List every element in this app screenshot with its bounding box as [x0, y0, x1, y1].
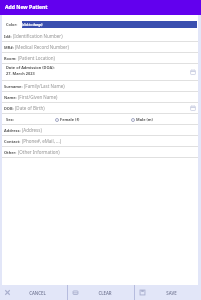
staticText: MR#: — [4, 45, 14, 50]
staticText: Contact: — [4, 139, 21, 144]
staticText: (click to change) — [22, 23, 43, 26]
staticText: Male (m) — [136, 117, 153, 122]
button[interactable]: Address: — [2, 125, 198, 136]
button[interactable]: Name: — [2, 92, 198, 103]
staticText: (First/Given Name) — [18, 94, 58, 100]
staticText: (Other Information) — [18, 149, 60, 155]
staticText: Room: — [4, 56, 17, 61]
staticText: (Identification Number) — [13, 33, 63, 39]
staticText: Surname: — [4, 84, 23, 89]
staticText: Id#: — [4, 34, 12, 39]
staticText: CLEAR — [98, 290, 112, 296]
staticText: Date of Admission (DOA): — [6, 65, 55, 70]
button[interactable]: Id#: — [2, 31, 198, 42]
staticText: (Medical Record Number) — [15, 44, 69, 50]
button[interactable]: MR#: — [2, 42, 198, 53]
staticText: (Phone#, eMail, ...) — [22, 138, 61, 144]
button[interactable]: Date of Admission (DOA): — [2, 64, 198, 81]
other: Pick date — [190, 105, 196, 111]
staticText: Address: — [4, 128, 21, 133]
staticText: (Family/Last Name) — [24, 83, 65, 89]
other: Pick date — [190, 69, 196, 75]
button[interactable]: Female (f) — [55, 117, 80, 122]
staticText: Add New Patient — [5, 4, 48, 11]
staticText: CANCEL — [29, 290, 46, 296]
staticText: DOB: — [4, 106, 14, 111]
button[interactable]: Color: — [2, 18, 198, 31]
staticText: Name: — [4, 95, 17, 100]
staticText: (Address) — [22, 127, 42, 133]
button[interactable]: Contact: — [2, 136, 198, 147]
button[interactable]: Surname: — [2, 81, 198, 92]
button[interactable]: DOB: — [2, 103, 198, 114]
button[interactable]: Add New Patient — [0, 0, 201, 15]
staticText: Color: — [6, 22, 18, 27]
staticText: (Patient Location) — [18, 55, 55, 61]
button[interactable]: CLEAR — [68, 285, 134, 300]
button[interactable]: Room: — [2, 53, 198, 64]
button[interactable]: CANCEL — [0, 285, 67, 300]
staticText: 27. March 2023 — [6, 71, 35, 76]
button[interactable]: Male (m) — [131, 117, 153, 122]
button[interactable]: Other: — [2, 147, 198, 158]
staticText: Female (f) — [60, 117, 80, 122]
staticText: Other: — [4, 150, 17, 155]
staticText: SAVE — [166, 290, 177, 296]
staticText: Sex: — [6, 117, 14, 122]
button[interactable]: SAVE — [135, 285, 201, 300]
staticText: (Date of Birth) — [15, 105, 45, 111]
